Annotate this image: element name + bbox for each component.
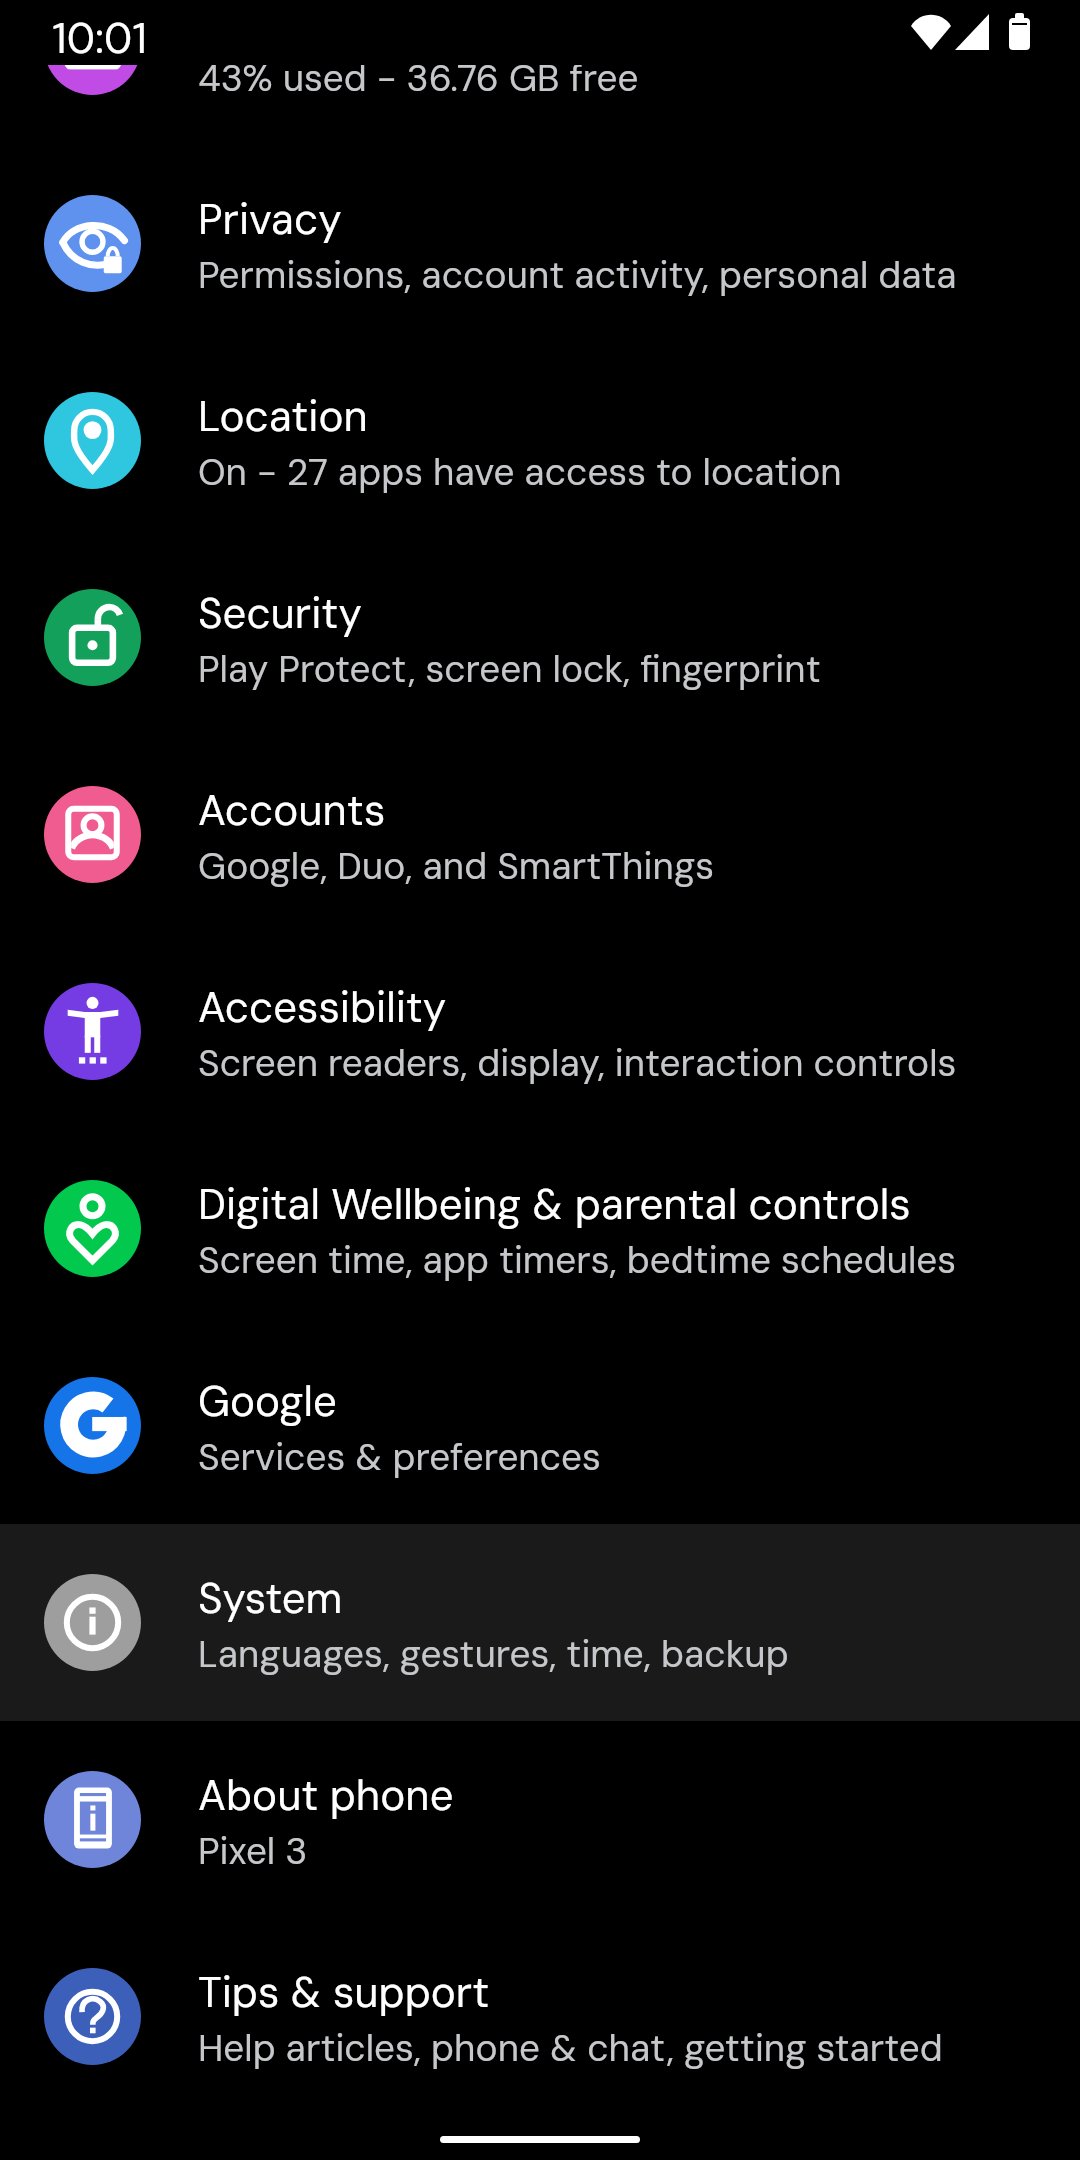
staticText: Accounts xyxy=(198,783,386,838)
staticText: Location xyxy=(198,389,368,444)
staticText: Help articles, phone & chat, getting sta… xyxy=(198,2024,943,2072)
button[interactable]: System xyxy=(0,1524,1080,1721)
staticText: 10:01 xyxy=(52,10,147,66)
staticText: Languages, gestures, time, backup xyxy=(198,1630,789,1678)
staticText: Digital Wellbeing & parental controls xyxy=(198,1177,911,1232)
staticText: System xyxy=(198,1571,343,1626)
staticText: Tips & support xyxy=(198,1965,490,2020)
button[interactable]: Security xyxy=(0,539,1080,736)
staticText: On - 27 apps have access to location xyxy=(198,448,842,496)
staticText: Play Protect, screen lock, fingerprint xyxy=(198,645,821,693)
button[interactable]: Digital Wellbeing & parental controls xyxy=(0,1130,1080,1327)
button[interactable]: Google xyxy=(0,1327,1080,1524)
staticText: Screen readers, display, interaction con… xyxy=(198,1039,957,1087)
staticText: Google xyxy=(198,1374,337,1429)
button[interactable]: Accessibility xyxy=(0,933,1080,1130)
button[interactable]: Tips & support xyxy=(0,1918,1080,2115)
staticText: Pixel 3 xyxy=(198,1827,308,1875)
staticText: Security xyxy=(198,586,362,641)
staticText: About phone xyxy=(198,1768,454,1823)
other: Home xyxy=(440,2136,640,2143)
button[interactable]: Privacy xyxy=(0,145,1080,342)
staticText: Permissions, account activity, personal … xyxy=(198,251,957,299)
staticText: Accessibility xyxy=(198,980,447,1035)
staticText: 43% used - 36.76 GB free xyxy=(198,54,639,102)
button[interactable]: Accounts xyxy=(0,736,1080,933)
staticText: Google, Duo, and SmartThings xyxy=(198,842,715,890)
staticText: Services & preferences xyxy=(198,1433,601,1481)
button[interactable]: Storage xyxy=(0,0,1080,145)
staticText: Privacy xyxy=(198,192,342,247)
button[interactable]: About phone xyxy=(0,1721,1080,1918)
button[interactable]: Location xyxy=(0,342,1080,539)
other: Wi-Fi, mobile signal and battery status xyxy=(905,8,1040,56)
staticText: Screen time, app timers, bedtime schedul… xyxy=(198,1236,957,1284)
